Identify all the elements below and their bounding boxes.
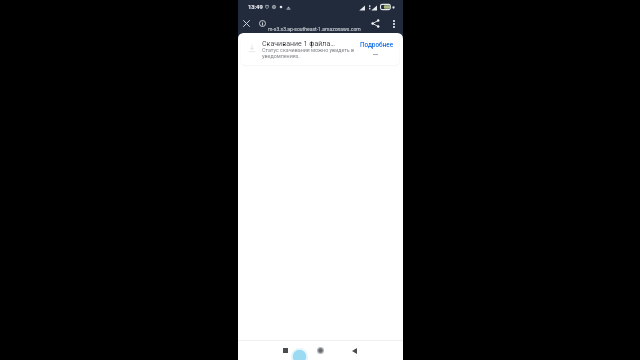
button[interactable]: Share <box>369 17 382 30</box>
staticText: Подробнее <box>360 41 394 49</box>
staticText: Скачивание 1 файла… <box>262 39 335 47</box>
staticText: Статус скачивания можно увидеть в уведом… <box>262 47 360 59</box>
button[interactable]: Home <box>314 344 327 357</box>
staticText: m-s3.s3.ap-southeast-1.amazonaws.com <box>268 26 361 32</box>
button[interactable]: Close <box>240 17 253 30</box>
staticText: 13:49 <box>248 4 263 11</box>
button[interactable]: Recents <box>279 344 292 357</box>
button[interactable]: Скачивание 1 файла… <box>241 34 399 65</box>
button[interactable]: Подробнее <box>353 34 398 65</box>
button[interactable]: Back <box>348 344 361 357</box>
button[interactable]: More options <box>387 17 400 30</box>
button[interactable]: Site information <box>256 17 269 30</box>
